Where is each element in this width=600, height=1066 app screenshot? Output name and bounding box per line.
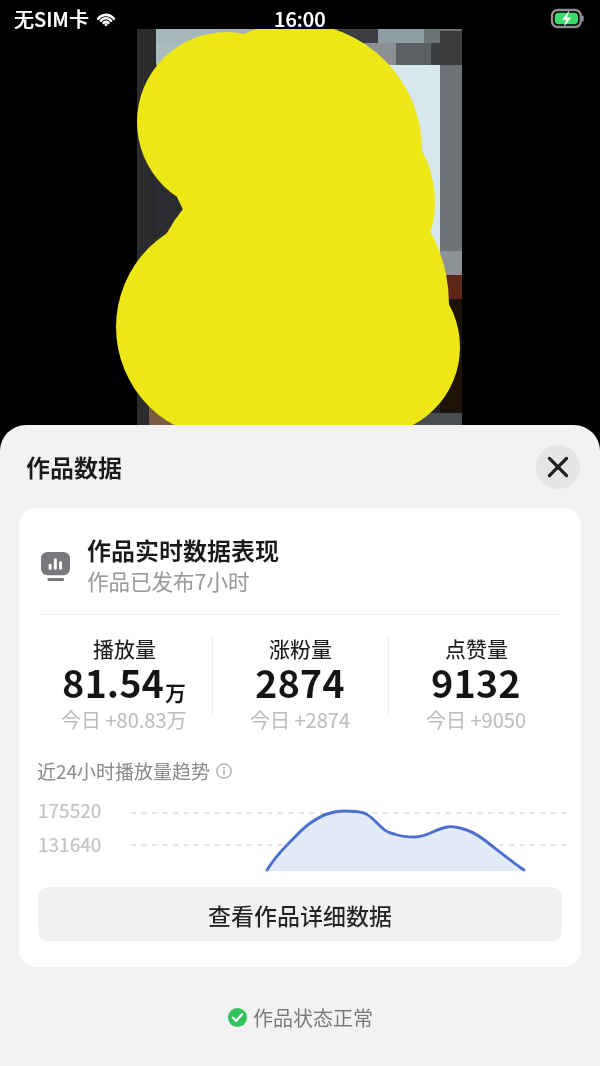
staticText: 9132	[431, 654, 521, 709]
staticText: 今日 +9050	[426, 705, 526, 734]
staticText: 81.54	[62, 654, 165, 709]
staticText: 16:00	[274, 4, 326, 33]
staticText: 涨粉量	[269, 633, 332, 663]
staticText: 无SIM卡	[14, 4, 89, 33]
staticText: 2874	[255, 654, 345, 709]
staticText: 点赞量	[445, 633, 508, 663]
staticText: 今日 +2874	[250, 705, 350, 734]
staticText: 查看作品详细数据	[208, 898, 392, 931]
staticText: 万	[165, 677, 186, 707]
staticText: 播放量	[93, 633, 156, 663]
staticText: 175520	[38, 796, 102, 824]
button[interactable]: 关闭	[536, 445, 580, 489]
staticText: 作品实时数据表现	[87, 532, 279, 567]
staticText: 作品已发布7小时	[87, 565, 250, 596]
staticText: 作品数据	[26, 449, 122, 484]
staticText: 近24小时播放量趋势	[37, 757, 211, 785]
staticText: 作品状态正常	[253, 1003, 373, 1032]
button[interactable]: 查看作品详细数据	[38, 887, 562, 941]
staticText: 今日 +80.83万	[61, 705, 187, 734]
staticText: 131640	[38, 830, 102, 858]
